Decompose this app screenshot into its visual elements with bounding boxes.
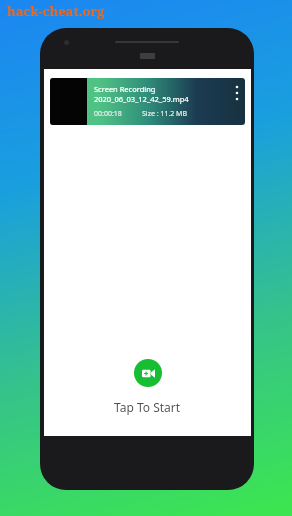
staticText: 00:00:18 bbox=[94, 109, 122, 119]
staticText: Size : 11.2 MB bbox=[142, 109, 188, 119]
staticText: 2020_06_03_12_42_59.mp4 bbox=[94, 94, 189, 104]
staticText: hack-cheat.org bbox=[7, 2, 105, 20]
button[interactable]: Screen Recording bbox=[50, 78, 245, 125]
staticText: Screen Recording bbox=[94, 84, 156, 94]
button[interactable]: More options bbox=[229, 78, 245, 125]
button[interactable]: Start recording bbox=[134, 359, 162, 387]
staticText: Tap To Start bbox=[114, 399, 181, 415]
